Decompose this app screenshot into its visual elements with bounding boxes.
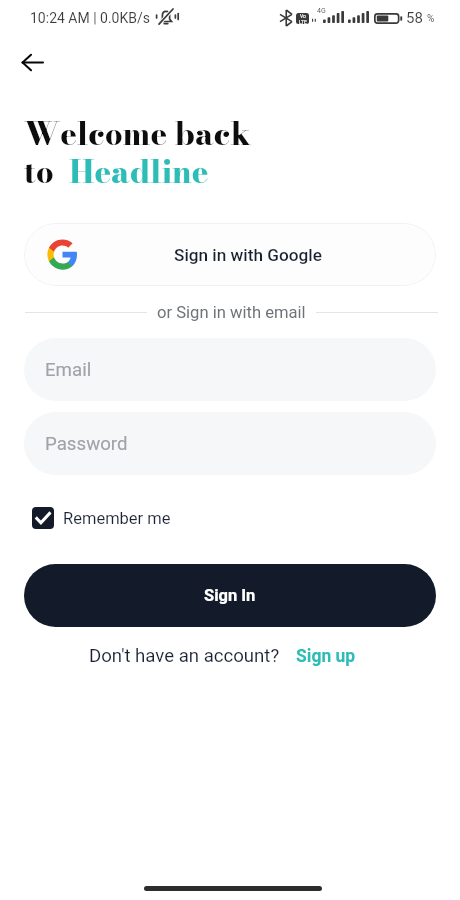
staticText: Vo xyxy=(300,13,306,19)
staticText: Password xyxy=(45,433,128,455)
button[interactable]: Back xyxy=(10,40,54,84)
staticText: Sign in with Google xyxy=(174,245,322,265)
staticText: Don't have an account? xyxy=(89,645,280,667)
staticText: Sign up xyxy=(296,646,356,667)
staticText: 58 xyxy=(406,9,423,27)
staticText: % xyxy=(427,13,435,25)
staticText: 4G xyxy=(317,7,326,15)
staticText: Sign In xyxy=(204,586,256,605)
staticText: Remember me xyxy=(63,509,171,528)
staticText: Welcome back to Headline xyxy=(24,110,251,196)
staticText: 10:24 AM | 0.0KB/s xyxy=(30,10,150,26)
staticText: or Sign in with email xyxy=(157,303,306,322)
button[interactable]: Password xyxy=(24,412,436,475)
button[interactable]: Remember me xyxy=(32,507,171,529)
button[interactable]: Email xyxy=(24,338,436,401)
staticText: Email xyxy=(45,359,92,381)
staticText: LTE xyxy=(299,19,307,24)
button[interactable]: Sign in with Google xyxy=(24,223,436,286)
button[interactable]: Sign In xyxy=(24,564,436,627)
button[interactable]: Sign up xyxy=(296,646,356,667)
